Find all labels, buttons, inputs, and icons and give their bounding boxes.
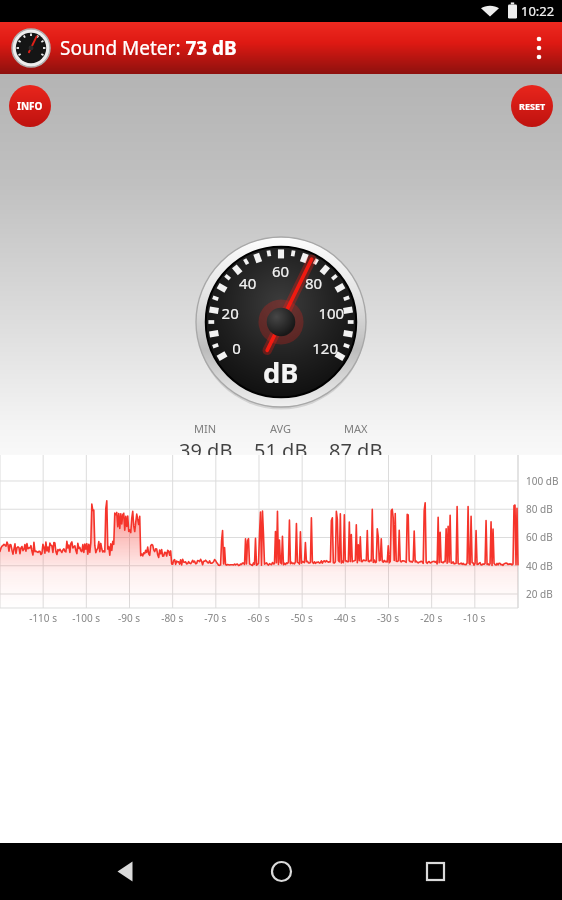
button[interactable]: Sound Meter icon xyxy=(12,29,50,67)
button[interactable]: Recent apps xyxy=(407,843,464,900)
staticText: 87 dB xyxy=(329,437,383,464)
button[interactable]: INFO xyxy=(9,85,51,127)
staticText: MAX xyxy=(344,421,368,436)
staticText: MIN xyxy=(194,421,217,436)
button[interactable]: Home xyxy=(253,843,310,900)
staticText: INFO xyxy=(17,99,43,113)
staticText: Sound Meter: 73 dB xyxy=(60,35,237,61)
button[interactable]: Back xyxy=(98,843,155,900)
staticText: AVG xyxy=(270,421,292,436)
button[interactable]: RESET xyxy=(511,85,553,127)
button[interactable]: More options xyxy=(516,22,562,74)
staticText: 51 dB xyxy=(254,437,308,464)
staticText: RESET xyxy=(519,100,546,112)
staticText: 39 dB xyxy=(179,437,233,464)
staticText: 10:22 xyxy=(521,2,555,20)
